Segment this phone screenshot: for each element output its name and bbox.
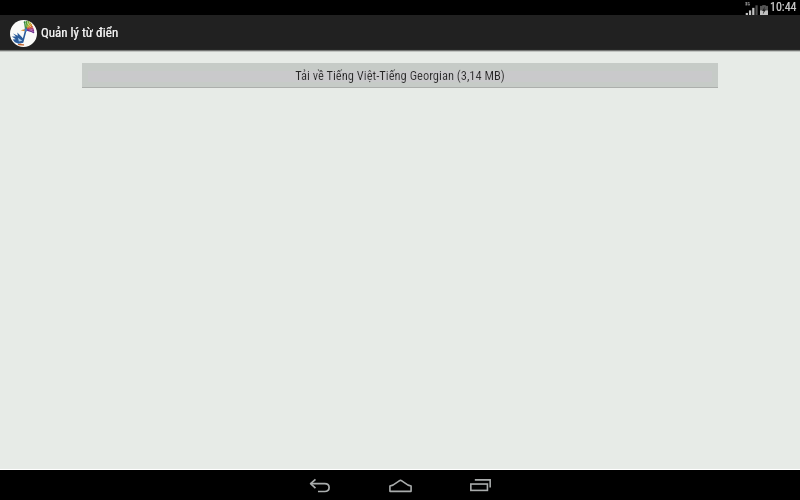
other: App icon xyxy=(10,20,37,47)
staticText: 10:44 xyxy=(770,0,797,14)
button[interactable]: Tải về Tiếng Việt-Tiếng Georgian (3,14 M… xyxy=(82,63,718,88)
button[interactable]: App icon xyxy=(0,15,129,49)
staticText: Quản lý từ điển xyxy=(41,25,119,40)
button[interactable]: Home xyxy=(360,470,440,500)
button[interactable]: Recent apps xyxy=(440,470,520,500)
staticText: Tải về Tiếng Việt-Tiếng Georgian (3,14 M… xyxy=(295,68,505,83)
button[interactable]: Back xyxy=(280,470,360,500)
